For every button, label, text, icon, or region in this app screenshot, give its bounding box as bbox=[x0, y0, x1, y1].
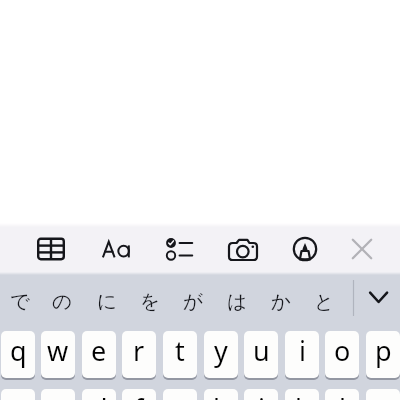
button[interactable]: u bbox=[244, 331, 278, 378]
staticText: に bbox=[97, 289, 117, 314]
button[interactable]: d bbox=[82, 389, 116, 400]
button[interactable]: q bbox=[1, 331, 35, 378]
staticText: f bbox=[134, 390, 144, 400]
staticText: か bbox=[271, 289, 291, 314]
staticText: j bbox=[258, 390, 265, 400]
button[interactable]: に bbox=[86, 274, 128, 328]
button[interactable]: t bbox=[163, 331, 197, 378]
button[interactable]: f bbox=[122, 389, 156, 400]
button[interactable]: は bbox=[216, 274, 258, 328]
staticText: e bbox=[91, 332, 107, 369]
button[interactable]: と bbox=[303, 274, 345, 328]
staticText: t bbox=[175, 332, 185, 369]
button[interactable]: j bbox=[244, 389, 278, 400]
staticText: p bbox=[375, 332, 392, 369]
button[interactable]: か bbox=[260, 274, 302, 328]
button[interactable]: を bbox=[129, 274, 171, 328]
button[interactable]: で bbox=[0, 274, 41, 328]
staticText: と bbox=[314, 289, 334, 314]
staticText: の bbox=[52, 289, 72, 314]
button[interactable]: k bbox=[285, 389, 319, 400]
button[interactable]: l bbox=[325, 389, 359, 400]
button[interactable]: Insert table bbox=[29, 227, 73, 271]
button[interactable]: y bbox=[204, 331, 238, 378]
staticText: r bbox=[133, 332, 145, 369]
staticText: h bbox=[213, 390, 230, 400]
staticText: が bbox=[183, 289, 203, 314]
staticText: u bbox=[253, 332, 270, 369]
button[interactable]: g bbox=[163, 389, 197, 400]
staticText: k bbox=[295, 390, 310, 400]
staticText: で bbox=[10, 289, 30, 314]
button[interactable]: Camera bbox=[221, 227, 265, 271]
button[interactable]: p bbox=[366, 331, 400, 378]
button[interactable]: の bbox=[41, 274, 83, 328]
staticText: を bbox=[140, 289, 160, 314]
staticText: d bbox=[91, 390, 108, 400]
button[interactable]: Checklist bbox=[158, 227, 202, 271]
button[interactable]: i bbox=[285, 331, 319, 378]
staticText: w bbox=[47, 332, 69, 369]
staticText: は bbox=[227, 289, 247, 314]
button[interactable]: a bbox=[1, 389, 35, 400]
button[interactable]: w bbox=[41, 331, 75, 378]
button[interactable]: Close bbox=[340, 227, 384, 271]
button[interactable]: h bbox=[204, 389, 238, 400]
button[interactable]: e bbox=[82, 331, 116, 378]
staticText: l bbox=[339, 390, 346, 400]
staticText: y bbox=[214, 332, 228, 369]
button[interactable]: が bbox=[172, 274, 214, 328]
button[interactable]: Markup bbox=[283, 227, 327, 271]
button[interactable]: o bbox=[325, 331, 359, 378]
button[interactable]: Hide suggestions bbox=[356, 272, 400, 330]
button[interactable]: s bbox=[41, 389, 75, 400]
staticText: q bbox=[10, 332, 27, 369]
button[interactable]: - bbox=[366, 389, 400, 400]
staticText: o bbox=[334, 332, 351, 369]
button[interactable]: r bbox=[122, 331, 156, 378]
button[interactable]: Text format bbox=[94, 227, 138, 271]
staticText: i bbox=[299, 332, 306, 369]
